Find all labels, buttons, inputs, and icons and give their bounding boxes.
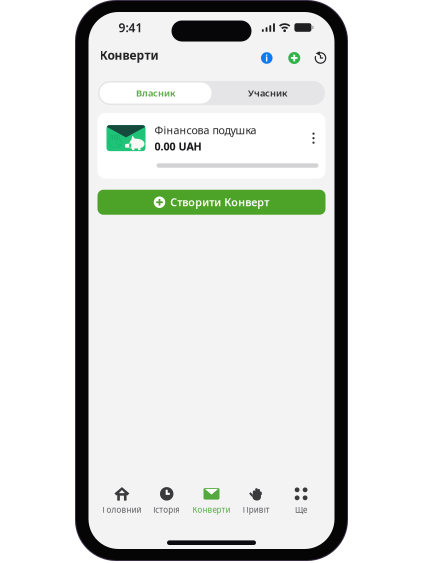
- button[interactable]: Фінансова подушка: [88, 105, 334, 179]
- staticText: Історія: [153, 504, 180, 515]
- staticText: Конверти: [192, 504, 230, 515]
- button[interactable]: Info: [253, 42, 280, 68]
- button[interactable]: Створити Конверт: [88, 179, 334, 215]
- staticText: Ще: [295, 504, 307, 515]
- button[interactable]: Історія: [144, 487, 189, 515]
- button[interactable]: Власник: [99, 82, 211, 103]
- button[interactable]: Привіт: [234, 487, 279, 515]
- button[interactable]: History: [308, 42, 333, 68]
- button[interactable]: Конверти: [189, 487, 234, 515]
- staticText: Учасник: [248, 87, 287, 99]
- staticText: i: [265, 52, 268, 64]
- staticText: 9:41: [118, 19, 142, 35]
- button[interactable]: Add envelope: [280, 42, 308, 68]
- staticText: Головний: [102, 504, 141, 515]
- button[interactable]: Головний: [99, 487, 144, 515]
- staticText: Власник: [136, 87, 175, 99]
- button[interactable]: Ще: [279, 487, 323, 515]
- button[interactable]: Учасник: [211, 82, 323, 103]
- staticText: Привіт: [243, 504, 270, 515]
- staticText: 0.00 UAH: [154, 139, 201, 153]
- staticText: Створити Конверт: [170, 195, 269, 209]
- staticText: Конверти: [99, 47, 158, 63]
- staticText: Фінансова подушка: [154, 123, 256, 137]
